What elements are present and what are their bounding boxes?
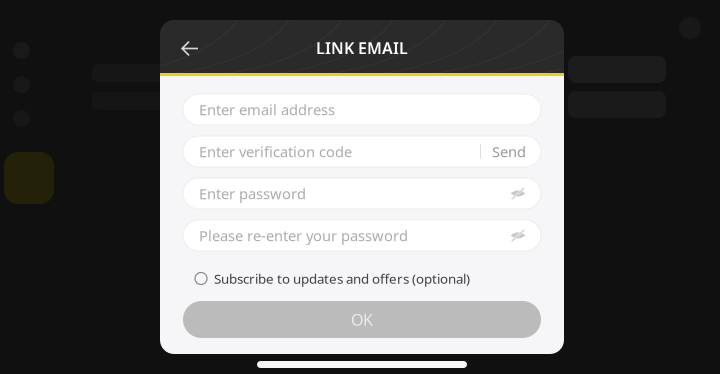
staticText: Enter password (199, 184, 306, 203)
staticText: Please re-enter your password (199, 226, 408, 245)
button[interactable]: Enter verification code (183, 136, 541, 167)
button[interactable]: Subscribe to updates and offers (optiona… (183, 266, 541, 291)
staticText: LINK EMAIL (316, 37, 408, 59)
staticText: Send (492, 142, 526, 161)
staticText: Enter verification code (199, 142, 352, 161)
staticText: Subscribe to updates and offers (optiona… (214, 270, 470, 287)
staticText: OK (351, 309, 373, 330)
button[interactable]: Enter email address (183, 94, 541, 125)
button[interactable]: Enter password (183, 178, 541, 209)
button[interactable]: OK (183, 301, 541, 338)
button[interactable]: Please re-enter your password (183, 220, 541, 251)
staticText: Enter email address (199, 100, 335, 119)
button[interactable]: Back (160, 22, 212, 70)
